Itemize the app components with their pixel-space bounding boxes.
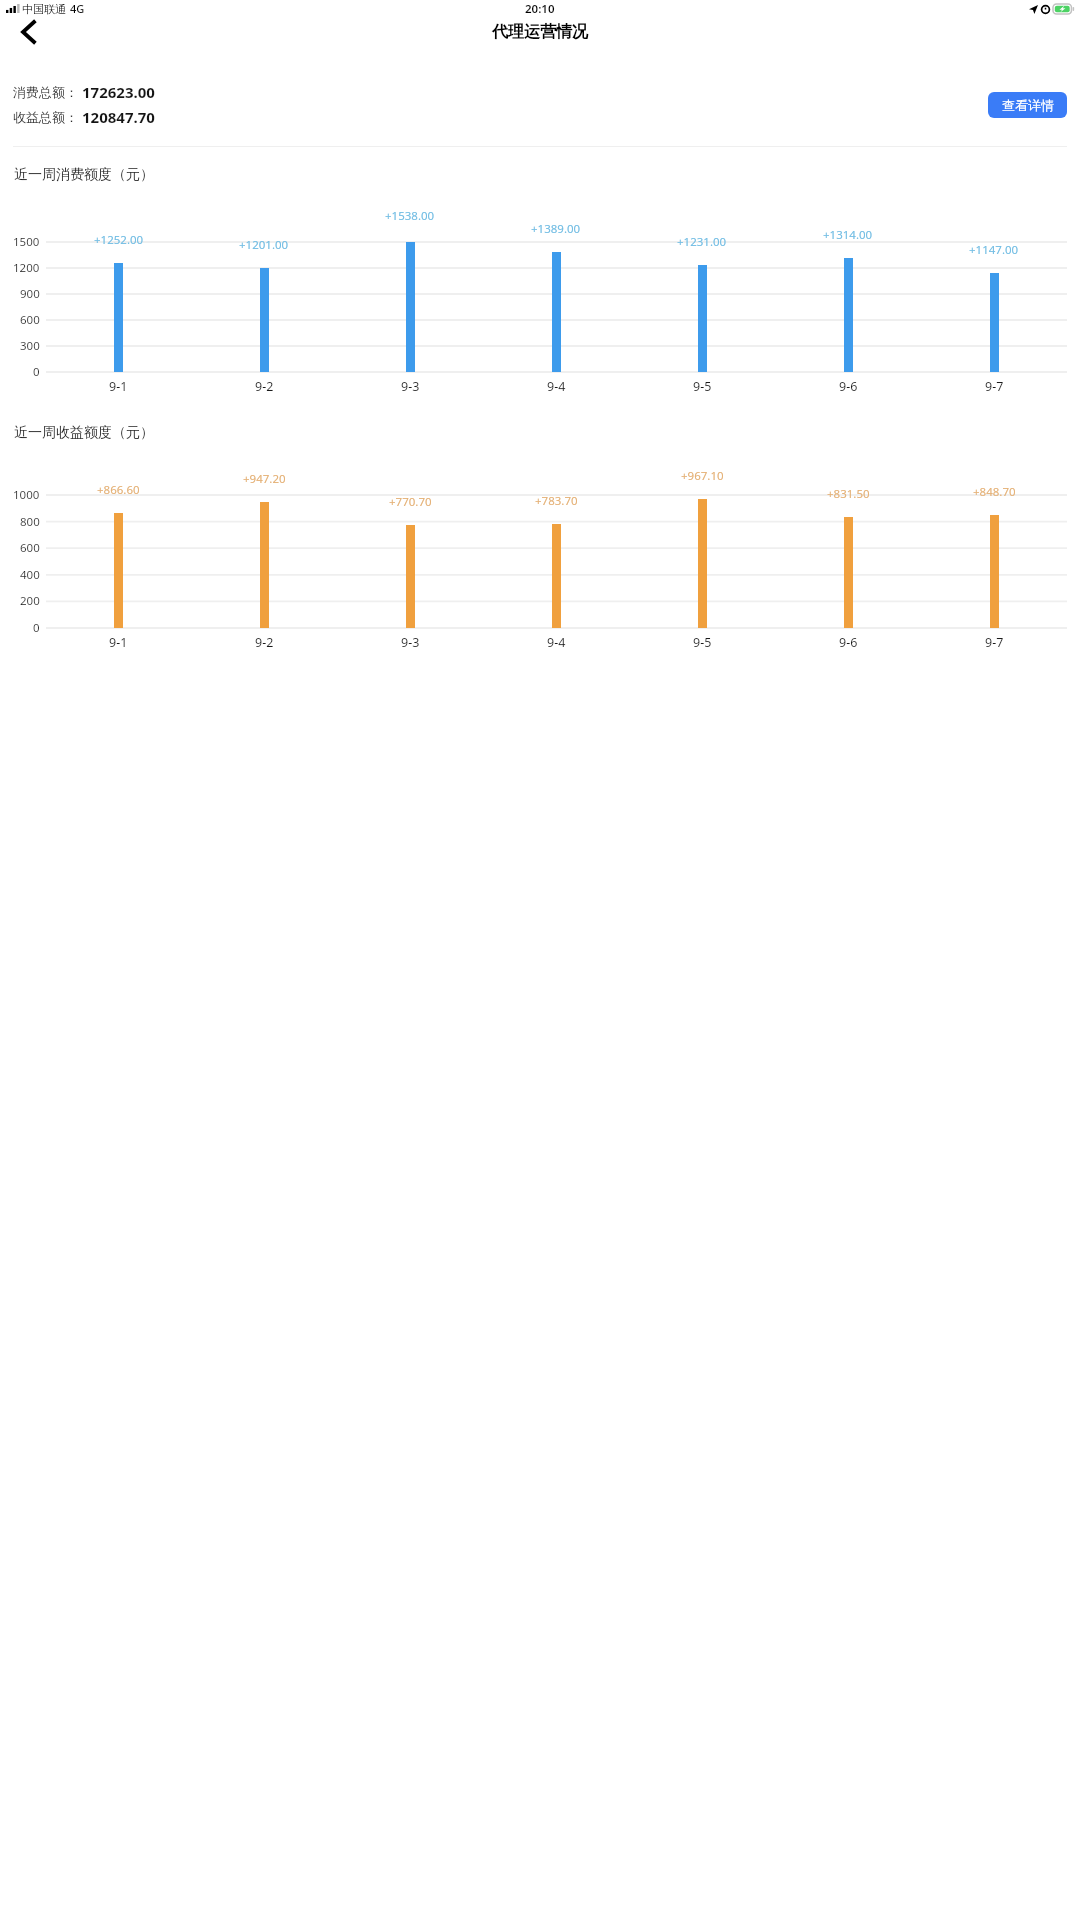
staticText: +831.50: [827, 486, 870, 502]
staticText: 4G: [70, 1, 85, 16]
staticText: 9-4: [547, 378, 566, 395]
staticText: +1201.00: [239, 237, 289, 253]
staticText: +866.60: [97, 482, 140, 498]
staticText: 400: [20, 567, 40, 583]
staticText: 中国联通: [22, 2, 66, 16]
staticText: 172623.00: [82, 82, 155, 102]
staticText: 9-1: [109, 378, 128, 395]
staticText: 9-4: [547, 634, 566, 651]
staticText: +1538.00: [385, 208, 435, 224]
staticText: 20:10: [525, 1, 555, 17]
staticText: 800: [20, 514, 40, 530]
staticText: +1231.00: [677, 234, 727, 250]
staticText: 近一周消费额度（元）: [14, 166, 154, 184]
staticText: 代理运营情况: [492, 22, 588, 42]
staticText: 9-6: [839, 634, 858, 651]
staticText: 收益总额：: [13, 109, 78, 125]
staticText: 600: [20, 312, 40, 328]
button[interactable]: 查看详情: [988, 92, 1067, 118]
staticText: 1500: [13, 234, 40, 250]
staticText: 9-5: [693, 378, 712, 395]
staticText: +770.70: [389, 494, 432, 510]
staticText: 1200: [13, 260, 40, 276]
staticText: 300: [20, 338, 40, 354]
staticText: 9-5: [693, 634, 712, 651]
staticText: +947.20: [243, 471, 286, 487]
staticText: 0: [33, 620, 40, 636]
staticText: 9-6: [839, 378, 858, 395]
staticText: 1000: [13, 487, 40, 503]
staticText: +967.10: [681, 468, 724, 484]
staticText: 查看详情: [1002, 97, 1054, 113]
staticText: 消费总额：: [13, 84, 78, 100]
staticText: 0: [33, 364, 40, 380]
staticText: +1389.00: [531, 221, 581, 237]
staticText: 200: [20, 593, 40, 609]
staticText: 9-3: [401, 378, 420, 395]
staticText: 9-2: [255, 634, 274, 651]
button[interactable]: Back: [13, 17, 43, 46]
staticText: +1147.00: [969, 242, 1019, 258]
staticText: +848.70: [973, 484, 1016, 500]
staticText: +783.70: [535, 493, 578, 509]
staticText: 600: [20, 540, 40, 556]
staticText: 9-3: [401, 634, 420, 651]
staticText: +1314.00: [823, 227, 873, 243]
staticText: 9-2: [255, 378, 274, 395]
staticText: 9-7: [985, 634, 1004, 651]
staticText: 900: [20, 286, 40, 302]
staticText: 9-1: [109, 634, 128, 651]
staticText: 近一周收益额度（元）: [14, 424, 154, 442]
staticText: 120847.70: [82, 107, 155, 127]
staticText: 9-7: [985, 378, 1004, 395]
staticText: +1252.00: [94, 232, 144, 248]
